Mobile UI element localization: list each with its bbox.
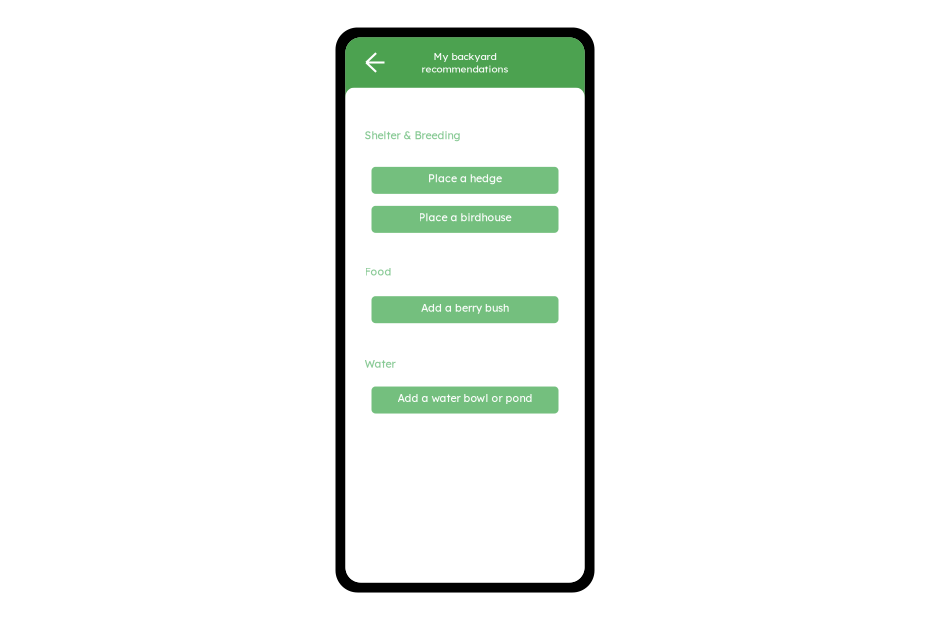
staticText: Place a birdhouse xyxy=(418,211,511,224)
staticText: Water xyxy=(364,357,395,370)
staticText: Add a berry bush xyxy=(421,301,509,314)
button[interactable]: Add a water bowl or pond xyxy=(371,386,558,413)
staticText: Food xyxy=(364,265,391,278)
staticText: Shelter & Breeding xyxy=(364,128,460,142)
staticText: Place a hedge xyxy=(428,172,502,185)
button[interactable]: Place a birdhouse xyxy=(371,206,558,233)
button[interactable]: Place a hedge xyxy=(371,167,558,194)
staticText: Add a water bowl or pond xyxy=(397,391,532,405)
button[interactable]: Back xyxy=(355,37,395,87)
button[interactable]: Add a berry bush xyxy=(371,296,558,323)
staticText: My backyard xyxy=(433,50,496,62)
staticText: recommendations xyxy=(421,62,508,75)
